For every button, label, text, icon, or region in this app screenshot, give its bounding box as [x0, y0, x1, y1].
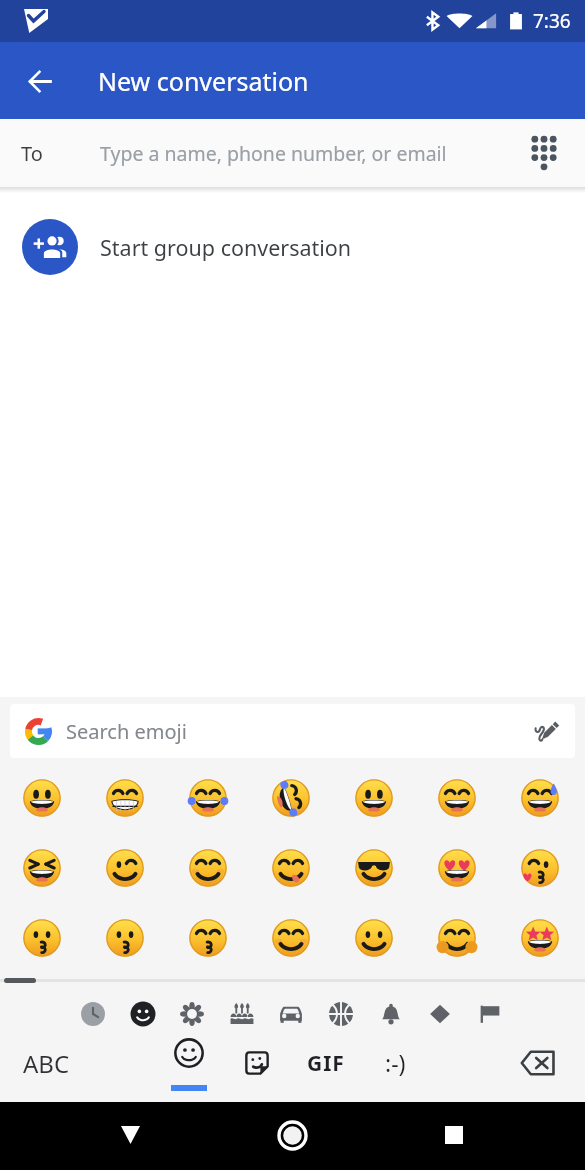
button[interactable]: Emoji — [162, 1039, 215, 1092]
button[interactable]: Emoji — [435, 846, 479, 890]
staticText: To — [21, 140, 43, 167]
button[interactable]: Emoji — [186, 846, 230, 890]
button[interactable]: Emoji — [269, 846, 313, 890]
button[interactable]: Nature — [172, 994, 212, 1034]
button[interactable]: Search emoji — [10, 704, 575, 758]
staticText: Type a name, phone number, or email — [100, 140, 447, 167]
staticText: ABC — [23, 1047, 70, 1080]
button[interactable]: Travel — [271, 994, 311, 1034]
button[interactable]: Emoji — [103, 846, 147, 890]
button[interactable]: Emoji — [518, 916, 562, 960]
button[interactable]: Food — [222, 994, 262, 1034]
button[interactable]: Emoji — [20, 916, 64, 960]
button[interactable]: Back — [106, 1111, 154, 1159]
button[interactable]: Emoji — [435, 916, 479, 960]
button[interactable]: Start group conversation — [0, 203, 585, 291]
button[interactable]: Stickers — [231, 1037, 283, 1089]
button[interactable]: Emoji — [103, 916, 147, 960]
button[interactable]: Handwriting input — [529, 713, 565, 749]
button[interactable]: Activities — [321, 994, 361, 1034]
button[interactable]: Backspace — [511, 1036, 564, 1089]
button[interactable]: Back — [16, 57, 64, 105]
button[interactable]: Objects — [371, 994, 411, 1034]
button[interactable]: Emoji — [518, 776, 562, 820]
staticText: GIF — [307, 1049, 345, 1078]
button[interactable]: Recent apps — [430, 1111, 478, 1159]
button[interactable]: Emoji — [518, 846, 562, 890]
staticText: 7:36 — [533, 8, 571, 34]
button[interactable]: Emoji — [352, 916, 396, 960]
staticText: New conversation — [98, 64, 309, 98]
button[interactable]: Emoji — [186, 916, 230, 960]
button[interactable]: Emoji — [20, 776, 64, 820]
button[interactable]: :-) — [363, 1036, 427, 1088]
button[interactable]: ABC — [4, 1035, 88, 1091]
button[interactable]: Emoji — [435, 776, 479, 820]
staticText: Start group conversation — [100, 233, 352, 262]
button[interactable]: Dialpad — [520, 129, 568, 177]
button[interactable]: Emoji — [352, 846, 396, 890]
button[interactable]: Emoji — [20, 846, 64, 890]
button[interactable]: GIF — [292, 1037, 360, 1089]
button[interactable]: Emoji — [269, 916, 313, 960]
staticText: Search emoji — [66, 718, 187, 745]
button[interactable]: Symbols — [420, 994, 460, 1034]
button[interactable]: Emoji — [103, 776, 147, 820]
button[interactable]: Emoji — [186, 776, 230, 820]
button[interactable]: Smileys — [123, 994, 163, 1034]
button[interactable]: Flags — [470, 994, 510, 1034]
button[interactable]: Emoji — [352, 776, 396, 820]
button[interactable]: Home — [268, 1111, 316, 1159]
button[interactable]: Emoji — [269, 776, 313, 820]
staticText: :-) — [385, 1047, 406, 1078]
button[interactable]: Recent — [73, 994, 113, 1034]
